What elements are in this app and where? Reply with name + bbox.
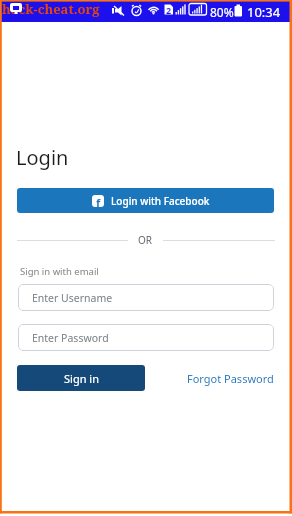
- staticText: hack-cheat.org: [2, 0, 100, 18]
- button[interactable]: Forgot Password: [187, 371, 274, 386]
- button[interactable]: Enter Password: [18, 324, 274, 351]
- staticText: Login: [16, 144, 69, 171]
- staticText: Login with Facebook: [111, 194, 210, 208]
- staticText: OR: [138, 233, 153, 247]
- staticText: 2: [166, 4, 172, 16]
- button[interactable]: f: [17, 188, 274, 213]
- staticText: Enter Username: [32, 291, 113, 305]
- button[interactable]: Sign in: [17, 365, 145, 391]
- staticText: f: [96, 195, 101, 207]
- staticText: Sign in: [64, 371, 99, 386]
- staticText: 10:34: [247, 3, 281, 21]
- staticText: Sign in with email: [20, 265, 99, 278]
- staticText: Enter Password: [32, 331, 109, 345]
- button[interactable]: Enter Username: [18, 284, 274, 311]
- staticText: 80%: [210, 4, 234, 20]
